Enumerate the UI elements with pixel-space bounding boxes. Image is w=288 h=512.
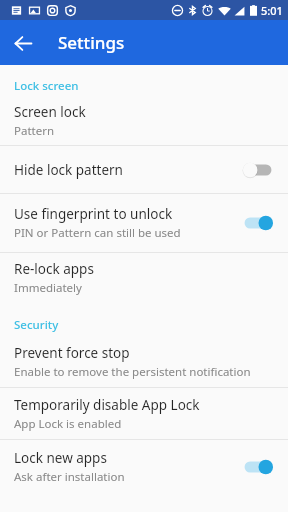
button[interactable]: Screen lock [0,97,288,145]
staticText: Ask after installation [14,469,125,485]
staticText: Security [14,317,59,333]
button[interactable]: Re-lock apps [0,253,288,302]
staticText: 5:01 [261,3,283,18]
button[interactable]: Back [6,26,40,60]
staticText: PIN or Pattern can still be used [14,225,181,241]
button[interactable]: Toggle off [242,159,274,181]
button[interactable]: Lock new apps [0,440,288,494]
button[interactable]: Temporarily disable App Lock [0,388,288,439]
button[interactable]: Prevent force stop [0,336,288,387]
staticText: Lock new apps [14,449,107,467]
staticText: Temporarily disable App Lock [14,396,200,414]
button[interactable]: Hide lock pattern [0,146,288,193]
button[interactable]: Toggle on [242,456,274,478]
staticText: Use fingerprint to unlock [14,205,173,223]
staticText: Screen lock [14,103,86,121]
staticText: Re-lock apps [14,260,94,278]
staticText: Settings [58,31,125,54]
staticText: Prevent force stop [14,344,130,362]
staticText: Immediately [14,280,82,296]
staticText: App Lock is enabled [14,416,122,432]
staticText: Enable to remove the persistent notifica… [14,364,251,380]
staticText: Lock screen [14,78,79,94]
button[interactable]: Use fingerprint to unlock [0,194,288,252]
staticText: Hide lock pattern [14,161,123,179]
button[interactable]: Toggle on [242,212,274,234]
staticText: Pattern [14,123,55,139]
